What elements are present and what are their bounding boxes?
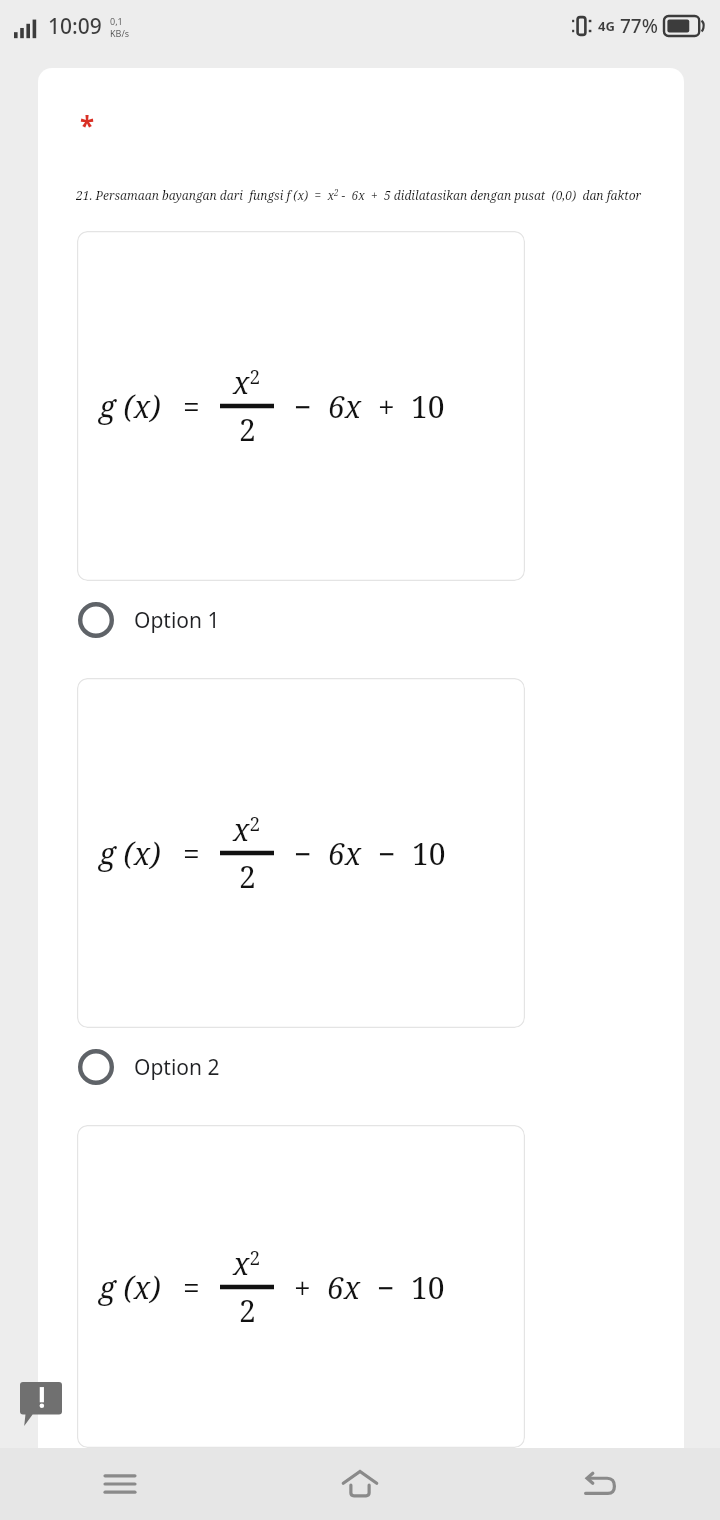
staticText: 10:09 [48, 12, 102, 41]
button[interactable]: g (x) [77, 678, 525, 1028]
button[interactable]: g (x) [77, 1125, 525, 1448]
staticText: 6x [327, 1267, 361, 1308]
staticText: * [80, 108, 95, 143]
button[interactable]: Recents [0, 1448, 240, 1520]
staticText: + [294, 1267, 311, 1308]
staticText: x2 [233, 809, 261, 850]
staticText: g (x) [99, 386, 161, 427]
button[interactable]: Back [480, 1448, 720, 1520]
staticText: 2 [239, 409, 256, 450]
staticText: + [378, 386, 395, 427]
button[interactable]: Warning [20, 1382, 62, 1426]
staticText: = [183, 833, 200, 874]
staticText: 2 [239, 1290, 256, 1331]
button[interactable]: Option 2 [38, 1036, 684, 1098]
staticText: g (x) [99, 1267, 161, 1308]
staticText: 77% [620, 13, 658, 39]
staticText: KB/s [110, 27, 130, 39]
staticText: Option 2 [134, 1053, 220, 1082]
staticText: = [183, 1267, 200, 1308]
staticText: − [378, 833, 396, 874]
button[interactable]: g (x) [77, 231, 525, 581]
button[interactable]: Option 1 [38, 589, 684, 651]
staticText: 10 [411, 1267, 445, 1308]
staticText: x2 [233, 362, 261, 403]
staticText: = [183, 386, 200, 427]
staticText: x2 [233, 1243, 261, 1284]
staticText: 21. Persamaan bayangan dari fungsi f (x)… [76, 187, 666, 203]
staticText: 2 [239, 856, 256, 897]
staticText: 10 [412, 833, 446, 874]
button[interactable]: Home [240, 1448, 480, 1520]
staticText: 0,1 [110, 15, 123, 27]
staticText: 10 [411, 386, 445, 427]
staticText: − [294, 833, 312, 874]
staticText: g (x) [99, 833, 161, 874]
staticText: 6x [328, 386, 362, 427]
staticText: 4G [598, 17, 615, 35]
staticText: − [294, 386, 312, 427]
staticText: Option 1 [134, 606, 220, 635]
staticText: − [377, 1267, 395, 1308]
staticText: 6x [328, 833, 362, 874]
